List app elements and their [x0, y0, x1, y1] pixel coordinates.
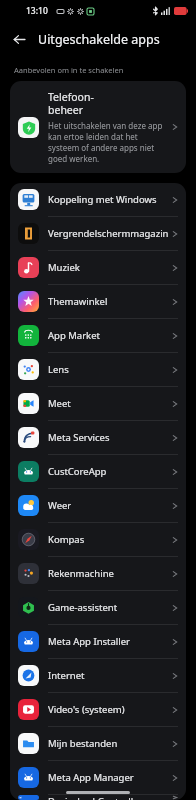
- button[interactable]: Kompas: [10, 523, 186, 556]
- staticText: Mijn bestanden: [48, 737, 169, 750]
- staticText: Meta App Installer: [48, 635, 169, 648]
- button[interactable]: Weer: [10, 489, 186, 522]
- button[interactable]: Rekenmachine: [10, 557, 186, 590]
- staticText: Weer: [48, 499, 169, 512]
- staticText: Koppeling met Windows: [48, 193, 169, 206]
- staticText: Video's (systeem): [48, 703, 169, 716]
- staticText: CustCoreApp: [48, 465, 169, 478]
- staticText: Meta App Manager: [48, 771, 169, 784]
- button[interactable]: Vergrendelschermmagazine: [10, 217, 186, 250]
- button[interactable]: Meta App Manager: [10, 761, 186, 794]
- staticText: DeviceLockController: [48, 795, 169, 800]
- button[interactable]: Meet: [10, 387, 186, 420]
- button[interactable]: Themawinkel: [10, 285, 186, 318]
- staticText: Kompas: [48, 533, 169, 546]
- button[interactable]: Meta Services: [10, 421, 186, 454]
- button[interactable]: Lens: [10, 353, 186, 386]
- staticText: Lens: [48, 363, 169, 376]
- button[interactable]: Back: [6, 26, 32, 52]
- staticText: Themawinkel: [48, 295, 169, 308]
- button[interactable]: Telefoon- beheer: [10, 81, 186, 173]
- button[interactable]: Muziek: [10, 251, 186, 284]
- staticText: Meta Services: [48, 431, 169, 444]
- button[interactable]: Koppeling met Windows: [10, 183, 186, 216]
- button[interactable]: Internet: [10, 659, 186, 692]
- button[interactable]: CustCoreApp: [10, 455, 186, 488]
- staticText: Het uitschakelen van deze app kan ertoe …: [48, 120, 168, 164]
- staticText: Meet: [48, 397, 169, 410]
- staticText: Telefoon- beheer: [48, 90, 94, 117]
- button[interactable]: Game-assistent: [10, 591, 186, 624]
- button[interactable]: Meta App Installer: [10, 625, 186, 658]
- button[interactable]: App Market: [10, 319, 186, 352]
- staticText: Rekenmachine: [48, 567, 169, 580]
- staticText: Game-assistent: [48, 601, 169, 614]
- button[interactable]: Video's (systeem): [10, 693, 186, 726]
- button[interactable]: DeviceLockController: [10, 795, 186, 800]
- staticText: App Market: [48, 329, 169, 342]
- staticText: Vergrendelschermmagazine: [48, 227, 169, 240]
- staticText: 13:10: [26, 5, 48, 17]
- staticText: Muziek: [48, 261, 169, 274]
- staticText: Aanbevolen om in te schakelen: [14, 65, 124, 75]
- button[interactable]: Mijn bestanden: [10, 727, 186, 760]
- staticText: Uitgeschakelde apps: [38, 31, 160, 48]
- staticText: Internet: [48, 669, 169, 682]
